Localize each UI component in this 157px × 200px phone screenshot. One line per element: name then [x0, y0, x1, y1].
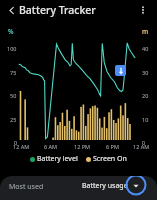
staticText: 12 AM: [133, 143, 150, 150]
button[interactable]: Selected data point: [115, 65, 126, 76]
staticText: 10: [142, 116, 149, 123]
button[interactable]: Most used: [7, 181, 46, 193]
staticText: Most used: [9, 182, 44, 192]
staticText: 40: [142, 45, 149, 52]
button[interactable]: More options: [133, 0, 153, 20]
staticText: 12 PM: [74, 143, 91, 150]
staticText: 0: [14, 139, 18, 146]
staticText: m: [142, 27, 149, 36]
staticText: 25: [10, 116, 17, 123]
staticText: 12 AM: [13, 143, 30, 150]
staticText: 30: [142, 69, 149, 76]
staticText: 6 AM: [44, 143, 58, 150]
staticText: 100: [7, 45, 17, 52]
button[interactable]: Back: [1, 0, 21, 20]
staticText: 6 PM: [106, 143, 119, 150]
staticText: Battery usage: [82, 181, 128, 191]
staticText: 50: [10, 92, 17, 99]
staticText: Battery level: [37, 154, 78, 164]
staticText: %: [8, 27, 14, 36]
staticText: 75: [10, 69, 17, 76]
staticText: Battery Tracker: [19, 3, 96, 17]
staticText: 20: [142, 92, 149, 99]
staticText: Screen On: [93, 154, 127, 164]
button[interactable]: Battery usage: [81, 180, 140, 192]
staticText: 0: [142, 139, 146, 146]
